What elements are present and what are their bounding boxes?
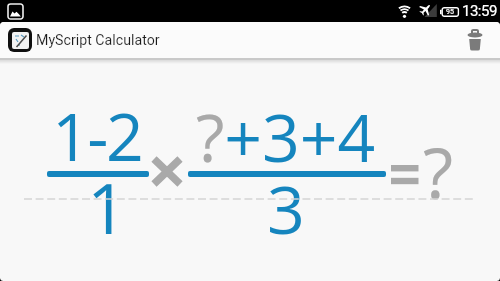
button[interactable] — [8, 28, 32, 52]
staticText: 3 — [267, 163, 305, 253]
staticText: 95 — [446, 8, 454, 16]
staticText: ?+3+4 — [196, 91, 376, 181]
staticText: ? — [423, 124, 454, 219]
staticText: MyScript Calculator — [36, 32, 160, 49]
staticText: 1 — [87, 159, 128, 254]
staticText: 1-2 — [52, 90, 142, 180]
button[interactable] — [457, 22, 493, 58]
staticText: 13:59 — [462, 2, 497, 20]
